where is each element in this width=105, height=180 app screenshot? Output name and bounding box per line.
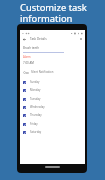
staticText: Silent Notification: [31, 70, 54, 74]
staticText: Saturday: [30, 130, 42, 134]
staticText: Task Details: [30, 37, 47, 41]
staticText: Friday: [30, 122, 38, 126]
staticText: Alarm: [23, 55, 31, 59]
staticText: Thursday: [30, 113, 42, 117]
button[interactable]: Sunday: [23, 79, 81, 85]
button[interactable]: Save: [78, 36, 84, 42]
button[interactable]: Friday: [23, 121, 81, 127]
button[interactable]: Monday: [23, 87, 81, 93]
staticText: Tuesday: [30, 97, 41, 101]
staticText: 7:00 AM: [23, 61, 34, 65]
button[interactable]: Silent Notification: [23, 69, 73, 75]
staticText: Customize task: [20, 1, 87, 14]
button[interactable]: Wednesday: [23, 104, 81, 110]
button[interactable]: Thursday: [23, 112, 81, 118]
staticText: Wednesday: [30, 105, 45, 109]
button[interactable]: Saturday: [23, 129, 81, 135]
button[interactable]: Back: [21, 36, 27, 42]
staticText: Sunday: [30, 80, 40, 84]
button[interactable]: Tuesday: [23, 96, 81, 102]
staticText: Monday: [30, 88, 41, 92]
staticText: information: [20, 12, 73, 25]
staticText: Brush teeth: [23, 46, 39, 50]
